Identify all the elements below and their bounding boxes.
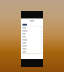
button[interactable]: Row — [21, 41, 43, 44]
button[interactable]: Row — [21, 47, 43, 50]
button[interactable]: Row — [21, 32, 43, 35]
button[interactable]: Row — [21, 44, 43, 47]
button[interactable]: Row — [21, 35, 43, 38]
button[interactable]: Row — [21, 50, 43, 53]
button[interactable]: Row — [21, 38, 43, 41]
button[interactable]: Row — [21, 26, 43, 29]
button[interactable]: Row — [21, 29, 43, 32]
